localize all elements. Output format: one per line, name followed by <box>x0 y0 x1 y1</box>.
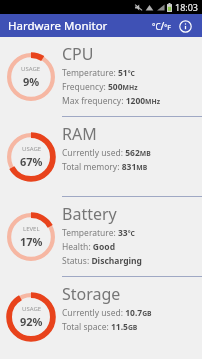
staticText: LEVEL <box>23 225 40 233</box>
staticText: 67% <box>20 154 43 169</box>
staticText: Currently used: 10.7GB <box>62 307 152 319</box>
staticText: 9% <box>23 74 40 89</box>
staticText: Temperature: 33°C <box>62 227 135 239</box>
staticText: Storage <box>62 283 121 305</box>
staticText: 92% <box>20 314 43 329</box>
staticText: USAGE <box>22 145 42 153</box>
staticText: Currently used: 562MB <box>62 147 151 159</box>
staticText: USAGE <box>21 65 41 73</box>
staticText: 18:03 <box>175 1 199 13</box>
button[interactable]: LEVEL <box>0 197 202 277</box>
staticText: °C/°F <box>152 19 171 33</box>
button[interactable]: Info <box>174 15 196 37</box>
staticText: Health: Good <box>62 241 116 253</box>
staticText: CPU <box>62 43 94 65</box>
staticText: Total space: 11.5GB <box>62 321 138 333</box>
staticText: Battery <box>62 203 117 225</box>
button[interactable]: USAGE <box>0 117 202 197</box>
button[interactable]: USAGE <box>0 37 202 117</box>
staticText: Hardware Monitor <box>8 18 108 34</box>
staticText: RAM <box>62 123 97 145</box>
button[interactable]: Toggle Celsius Fahrenheit <box>150 15 172 37</box>
staticText: USAGE <box>22 305 42 313</box>
staticText: Temperature: 51°C <box>62 67 135 79</box>
staticText: Frequency: 500MHz <box>62 81 138 93</box>
staticText: Status: Discharging <box>62 255 142 267</box>
staticText: 17% <box>20 234 43 249</box>
button[interactable]: USAGE <box>0 277 202 357</box>
staticText: Total memory: 831MB <box>62 161 148 173</box>
staticText: Max frequency: 1200MHz <box>62 95 161 107</box>
